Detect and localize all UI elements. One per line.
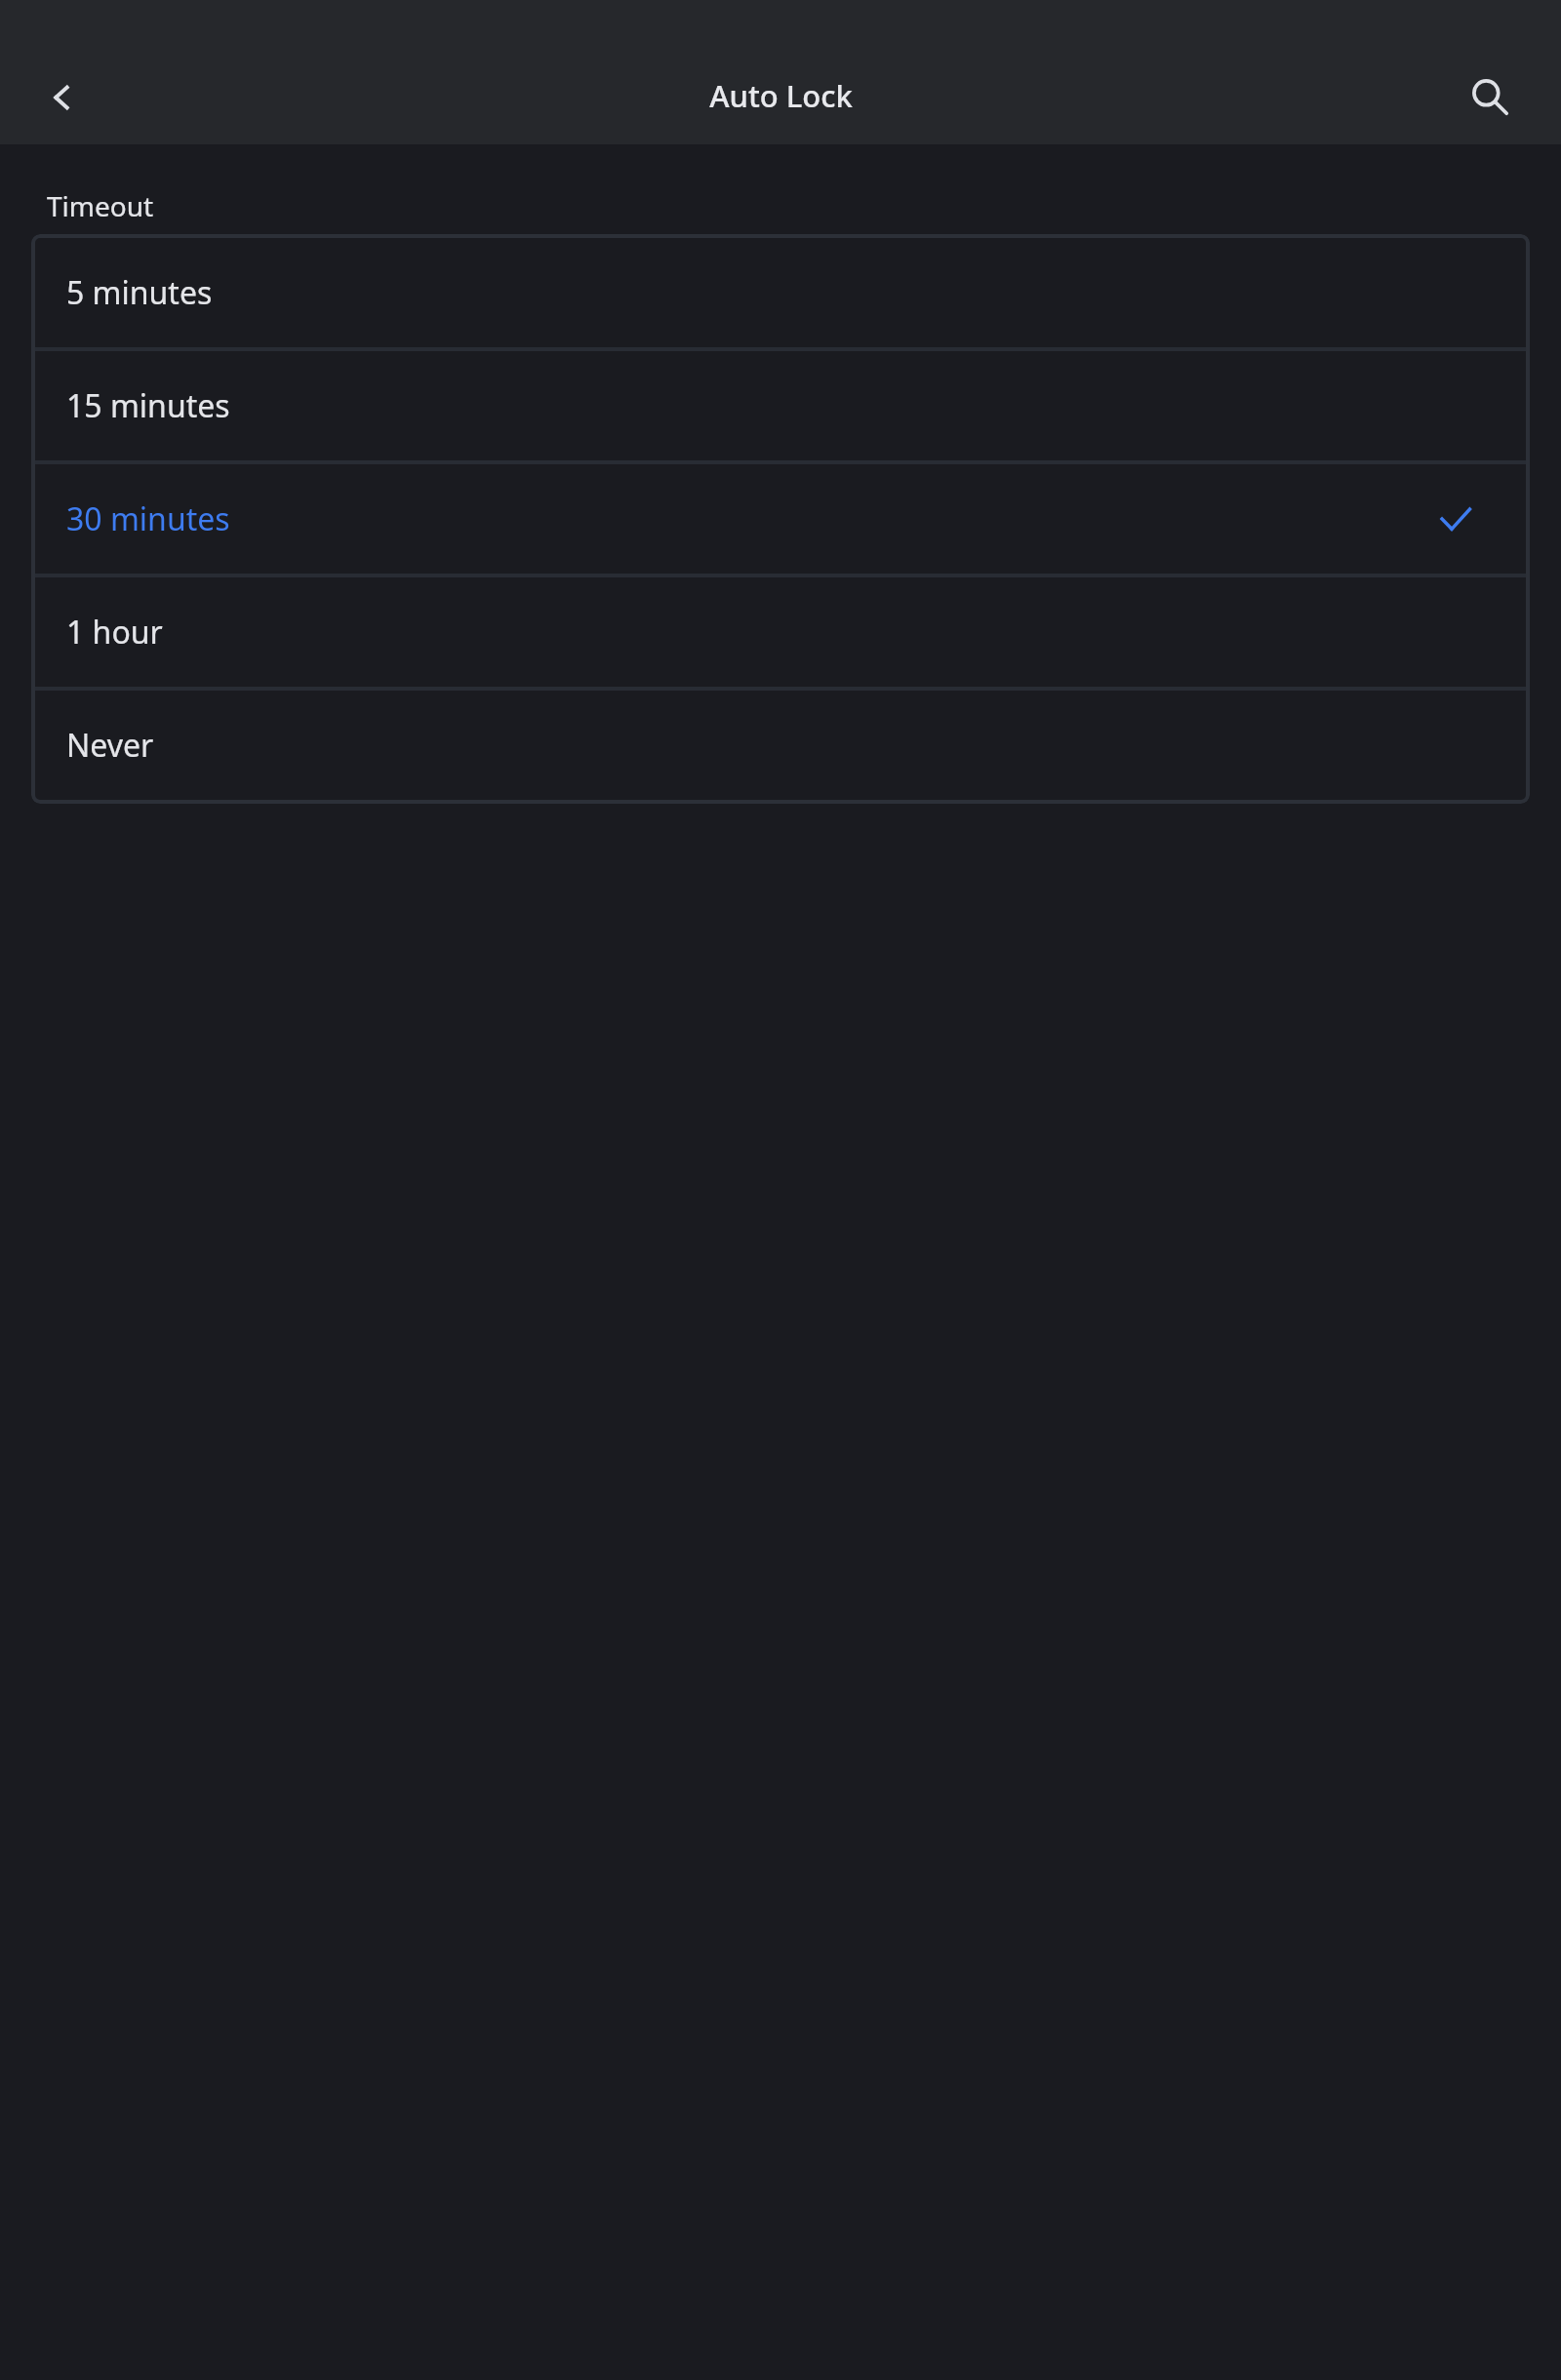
button[interactable]: 5 minutes [35, 238, 1526, 347]
button[interactable]: 30 minutes [35, 464, 1526, 574]
staticText: 5 minutes [66, 271, 213, 314]
staticText: Timeout [47, 187, 154, 224]
staticText: 1 hour [66, 611, 163, 654]
button[interactable]: 15 minutes [35, 351, 1526, 460]
staticText: Auto Lock [709, 75, 853, 116]
staticText: 30 minutes [66, 497, 230, 540]
button[interactable]: Search [1439, 48, 1537, 145]
staticText: 15 minutes [66, 384, 230, 427]
button[interactable]: 1 hour [35, 577, 1526, 687]
button[interactable]: Never [35, 691, 1526, 800]
staticText: Never [66, 724, 154, 767]
button[interactable]: Back [13, 49, 110, 146]
